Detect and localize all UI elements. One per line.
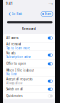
button[interactable]: All access (3, 34, 55, 42)
button[interactable]: Switch on all (3, 86, 55, 93)
staticText: ••• ▮ (49, 3, 53, 5)
staticText: Ad removal (6, 43, 21, 46)
staticText: Go Back (11, 12, 21, 16)
staticText: Accept all requests (6, 77, 32, 81)
button[interactable]: Toggle (48, 62, 53, 65)
button[interactable]: Toggle (48, 88, 53, 91)
button[interactable]: Go Back (7, 10, 22, 17)
staticText: Share (45, 12, 52, 16)
staticText: Offer to open (6, 62, 26, 66)
staticText: When I file is about (6, 69, 34, 72)
staticText: Always allow (6, 81, 22, 85)
staticText: Removed (22, 27, 36, 31)
staticText: 9:41 (6, 2, 13, 5)
button[interactable]: Toggle (48, 37, 53, 39)
button[interactable]: Offer to open (3, 60, 55, 68)
staticText: Tap to learn more (6, 46, 30, 50)
button[interactable]: Toggle (48, 95, 53, 97)
staticText: Quick notes (6, 94, 22, 98)
staticText: No limit (6, 72, 17, 76)
staticText: Subscription active (6, 55, 31, 59)
button[interactable]: Accept all requests (3, 77, 55, 85)
staticText: No ads (6, 51, 15, 55)
staticText: All access (6, 36, 18, 40)
button[interactable]: No ads (3, 51, 55, 60)
staticText: Switch on all (6, 87, 23, 91)
button[interactable]: Toggle (48, 80, 53, 83)
button[interactable]: Quick notes (3, 93, 55, 99)
button[interactable]: Share (41, 11, 53, 17)
button[interactable]: When I file is about (3, 68, 55, 77)
button[interactable]: Toggle (48, 54, 53, 56)
button[interactable]: Ad removal (3, 42, 55, 50)
